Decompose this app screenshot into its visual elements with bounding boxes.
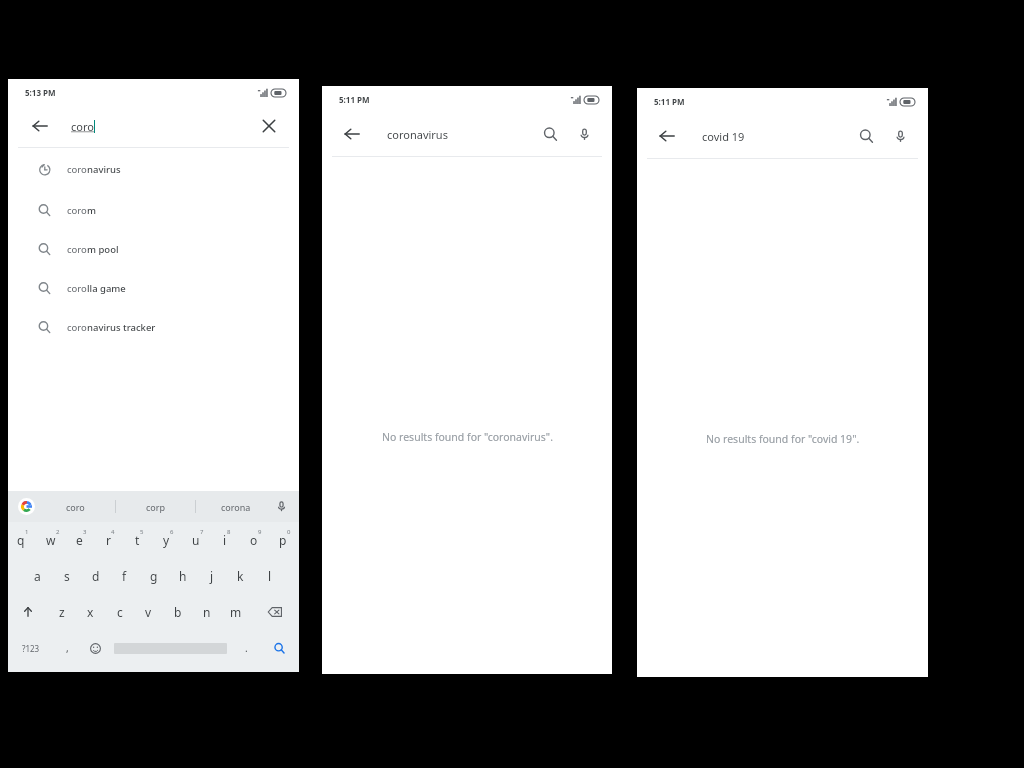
button[interactable]: r [96, 522, 125, 558]
staticText: 5 [140, 528, 144, 536]
button[interactable]: . [232, 630, 260, 666]
button[interactable]: i [212, 522, 241, 558]
button[interactable]: Search [858, 128, 875, 145]
button[interactable]: t [125, 522, 154, 558]
button[interactable]: x [76, 594, 105, 630]
button[interactable]: Search [542, 126, 559, 143]
button[interactable]: coro [8, 308, 299, 347]
button[interactable]: q [8, 522, 38, 558]
staticText: 7 [200, 528, 204, 536]
button[interactable]: d [81, 558, 110, 594]
button[interactable]: Back [342, 124, 362, 144]
staticText: coro [66, 501, 85, 513]
button[interactable]: Backspace [250, 594, 299, 630]
button[interactable]: Voice search [577, 127, 592, 142]
staticText: covid 19 [702, 129, 745, 144]
staticText: m [230, 604, 242, 620]
button[interactable]: Back [322, 112, 612, 156]
button[interactable]: b [163, 594, 192, 630]
button[interactable]: Back [637, 114, 928, 158]
button[interactable]: Voice input [275, 500, 288, 513]
button[interactable]: p [270, 522, 299, 558]
button[interactable]: coro [35, 501, 115, 513]
staticText: w [46, 532, 56, 548]
staticText: f [122, 568, 127, 584]
staticText: corp [146, 501, 166, 513]
staticText: m [87, 204, 96, 217]
button[interactable]: c [105, 594, 134, 630]
button[interactable]: Clear [261, 118, 277, 134]
staticText: navirus tracker [87, 321, 156, 334]
staticText: ?123 [22, 643, 40, 654]
button[interactable]: Shift [8, 594, 47, 630]
staticText: c [117, 604, 123, 620]
staticText: j [210, 568, 214, 584]
staticText: No results found for "coronavirus". [382, 430, 553, 444]
staticText: 0 [287, 528, 291, 536]
staticText: l [268, 568, 272, 584]
staticText: coro [67, 204, 87, 217]
button[interactable]: o [241, 522, 270, 558]
button[interactable]: k [226, 558, 255, 594]
button[interactable]: y [154, 522, 183, 558]
button[interactable]: Back [657, 126, 677, 146]
button[interactable]: l [255, 558, 284, 594]
button[interactable]: coro [8, 230, 299, 269]
button[interactable]: coro [8, 269, 299, 308]
staticText: . [245, 641, 248, 655]
staticText: h [179, 568, 187, 584]
button[interactable]: v [134, 594, 163, 630]
staticText: u [192, 532, 200, 548]
staticText: e [76, 532, 83, 548]
button[interactable]: g [139, 558, 168, 594]
button[interactable]: z [47, 594, 76, 630]
button[interactable]: Search [260, 630, 299, 666]
button[interactable]: corp [116, 501, 195, 513]
button[interactable]: m [221, 594, 250, 630]
button[interactable]: Google [18, 498, 35, 515]
button[interactable]: corona [196, 501, 275, 513]
staticText: coro [67, 321, 87, 334]
button[interactable]: h [168, 558, 197, 594]
staticText: y [163, 532, 170, 548]
button[interactable]: Back [8, 105, 299, 147]
button[interactable]: Space [109, 630, 232, 666]
staticText: t [135, 532, 140, 548]
staticText: p [279, 532, 287, 548]
staticText: 2 [56, 528, 60, 536]
button[interactable]: j [197, 558, 226, 594]
button[interactable]: u [183, 522, 212, 558]
staticText: z [59, 604, 65, 620]
button[interactable]: , [53, 630, 81, 666]
button[interactable]: Voice search [893, 129, 908, 144]
staticText: m pool [87, 243, 119, 256]
staticText: d [92, 568, 100, 584]
button[interactable]: coro [8, 148, 299, 191]
staticText: b [174, 604, 182, 620]
staticText: 8 [227, 528, 231, 536]
staticText: r [106, 532, 111, 548]
button[interactable]: ?123 [8, 630, 53, 666]
staticText: a [34, 568, 41, 584]
staticText: 1 [25, 528, 29, 536]
button[interactable]: e [67, 522, 96, 558]
button[interactable]: f [110, 558, 139, 594]
staticText: i [223, 532, 227, 548]
button[interactable]: coro [8, 191, 299, 230]
button[interactable]: Back [30, 116, 50, 136]
staticText: coro [67, 163, 87, 176]
button[interactable]: a [23, 558, 52, 594]
button[interactable]: s [52, 558, 81, 594]
staticText: 6 [170, 528, 174, 536]
button[interactable]: Emoji [81, 630, 109, 666]
staticText: coronavirus [387, 127, 448, 142]
staticText: v [145, 604, 152, 620]
staticText: 5:11 PM [339, 94, 370, 105]
button[interactable]: n [192, 594, 221, 630]
staticText: s [64, 568, 70, 584]
staticText: navirus [87, 163, 121, 176]
staticText: 5:11 PM [654, 96, 685, 107]
button[interactable]: w [38, 522, 67, 558]
staticText: corona [221, 501, 251, 513]
staticText: o [250, 532, 258, 548]
